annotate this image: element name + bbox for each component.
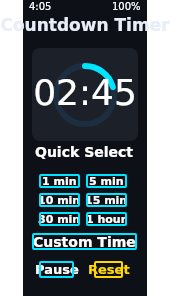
staticText: 02:45 bbox=[32, 72, 138, 114]
staticText: 100% bbox=[112, 1, 141, 13]
button[interactable]: 5 min bbox=[86, 174, 127, 188]
staticText: 10 min bbox=[38, 194, 81, 207]
button[interactable]: 1 hour bbox=[86, 212, 127, 226]
staticText: 1 min bbox=[42, 175, 77, 188]
staticText: Countdown Timer bbox=[0, 15, 170, 35]
staticText: Quick Select bbox=[22, 144, 146, 160]
staticText: 4:05 bbox=[29, 1, 52, 13]
button[interactable]: 10 min bbox=[39, 193, 80, 207]
staticText: Pause bbox=[35, 262, 79, 277]
button[interactable]: 1 min bbox=[39, 174, 80, 188]
button[interactable]: Reset bbox=[94, 261, 123, 278]
staticText: 5 min bbox=[89, 175, 124, 188]
staticText: 1 hour bbox=[86, 213, 127, 226]
button[interactable]: Pause bbox=[39, 261, 74, 278]
staticText: 30 min bbox=[38, 213, 81, 226]
staticText: Custom Time bbox=[33, 234, 136, 250]
button[interactable]: 15 min bbox=[86, 193, 127, 207]
staticText: Reset bbox=[88, 262, 130, 277]
button[interactable]: 30 min bbox=[39, 212, 80, 226]
button[interactable]: Custom Time bbox=[32, 233, 137, 250]
staticText: 15 min bbox=[85, 194, 128, 207]
